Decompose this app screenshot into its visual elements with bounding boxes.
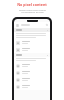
staticText: No pixel content bbox=[17, 2, 47, 7]
button[interactable] bbox=[14, 83, 50, 90]
button[interactable] bbox=[14, 69, 50, 76]
button[interactable] bbox=[14, 53, 50, 57]
button[interactable]: Menu bbox=[16, 24, 19, 27]
button[interactable] bbox=[14, 39, 50, 46]
button[interactable] bbox=[14, 46, 50, 53]
button[interactable]: Menu bbox=[14, 22, 50, 28]
button[interactable] bbox=[14, 62, 50, 69]
button[interactable] bbox=[14, 28, 50, 32]
button[interactable] bbox=[21, 24, 30, 26]
staticText: Really more than 40000 UI elements be fr… bbox=[19, 8, 46, 14]
button[interactable] bbox=[14, 76, 50, 83]
